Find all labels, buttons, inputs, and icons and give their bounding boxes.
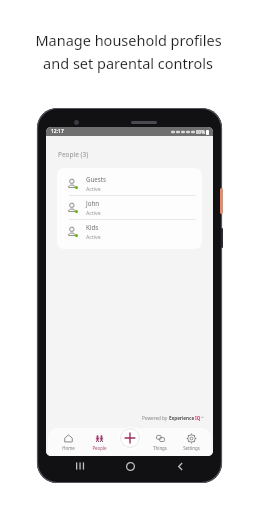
- button[interactable]: Add: [119, 427, 141, 449]
- staticText: Active: [86, 233, 101, 240]
- button[interactable]: Things: [147, 431, 173, 454]
- button[interactable]: Back: [172, 458, 188, 474]
- staticText: ™: [201, 416, 204, 420]
- button[interactable]: John: [57, 196, 202, 219]
- button[interactable]: People: [86, 431, 112, 454]
- staticText: Guests: [86, 175, 106, 183]
- button[interactable]: Settings: [178, 431, 204, 454]
- staticText: Active: [86, 185, 101, 192]
- staticText: Things: [153, 445, 167, 451]
- staticText: IQ: [195, 415, 201, 421]
- staticText: Manage household profiles: [35, 30, 222, 50]
- staticText: Experience: [169, 415, 195, 421]
- button[interactable]: Guests: [57, 172, 202, 195]
- staticText: Settings: [183, 445, 200, 451]
- button[interactable]: Recent apps: [72, 458, 88, 474]
- staticText: and set parental controls: [43, 53, 213, 73]
- staticText: Powered by: [142, 415, 169, 421]
- staticText: 12:17: [51, 128, 64, 135]
- staticText: 90%: [196, 129, 205, 135]
- button[interactable]: Home: [55, 431, 81, 454]
- staticText: People (3): [58, 150, 89, 159]
- button[interactable]: Kids: [57, 220, 202, 243]
- staticText: John: [86, 199, 100, 207]
- staticText: People: [92, 445, 107, 451]
- staticText: Kids: [86, 223, 99, 231]
- button[interactable]: Home: [122, 458, 138, 474]
- staticText: Active: [86, 209, 101, 216]
- staticText: Home: [62, 445, 75, 451]
